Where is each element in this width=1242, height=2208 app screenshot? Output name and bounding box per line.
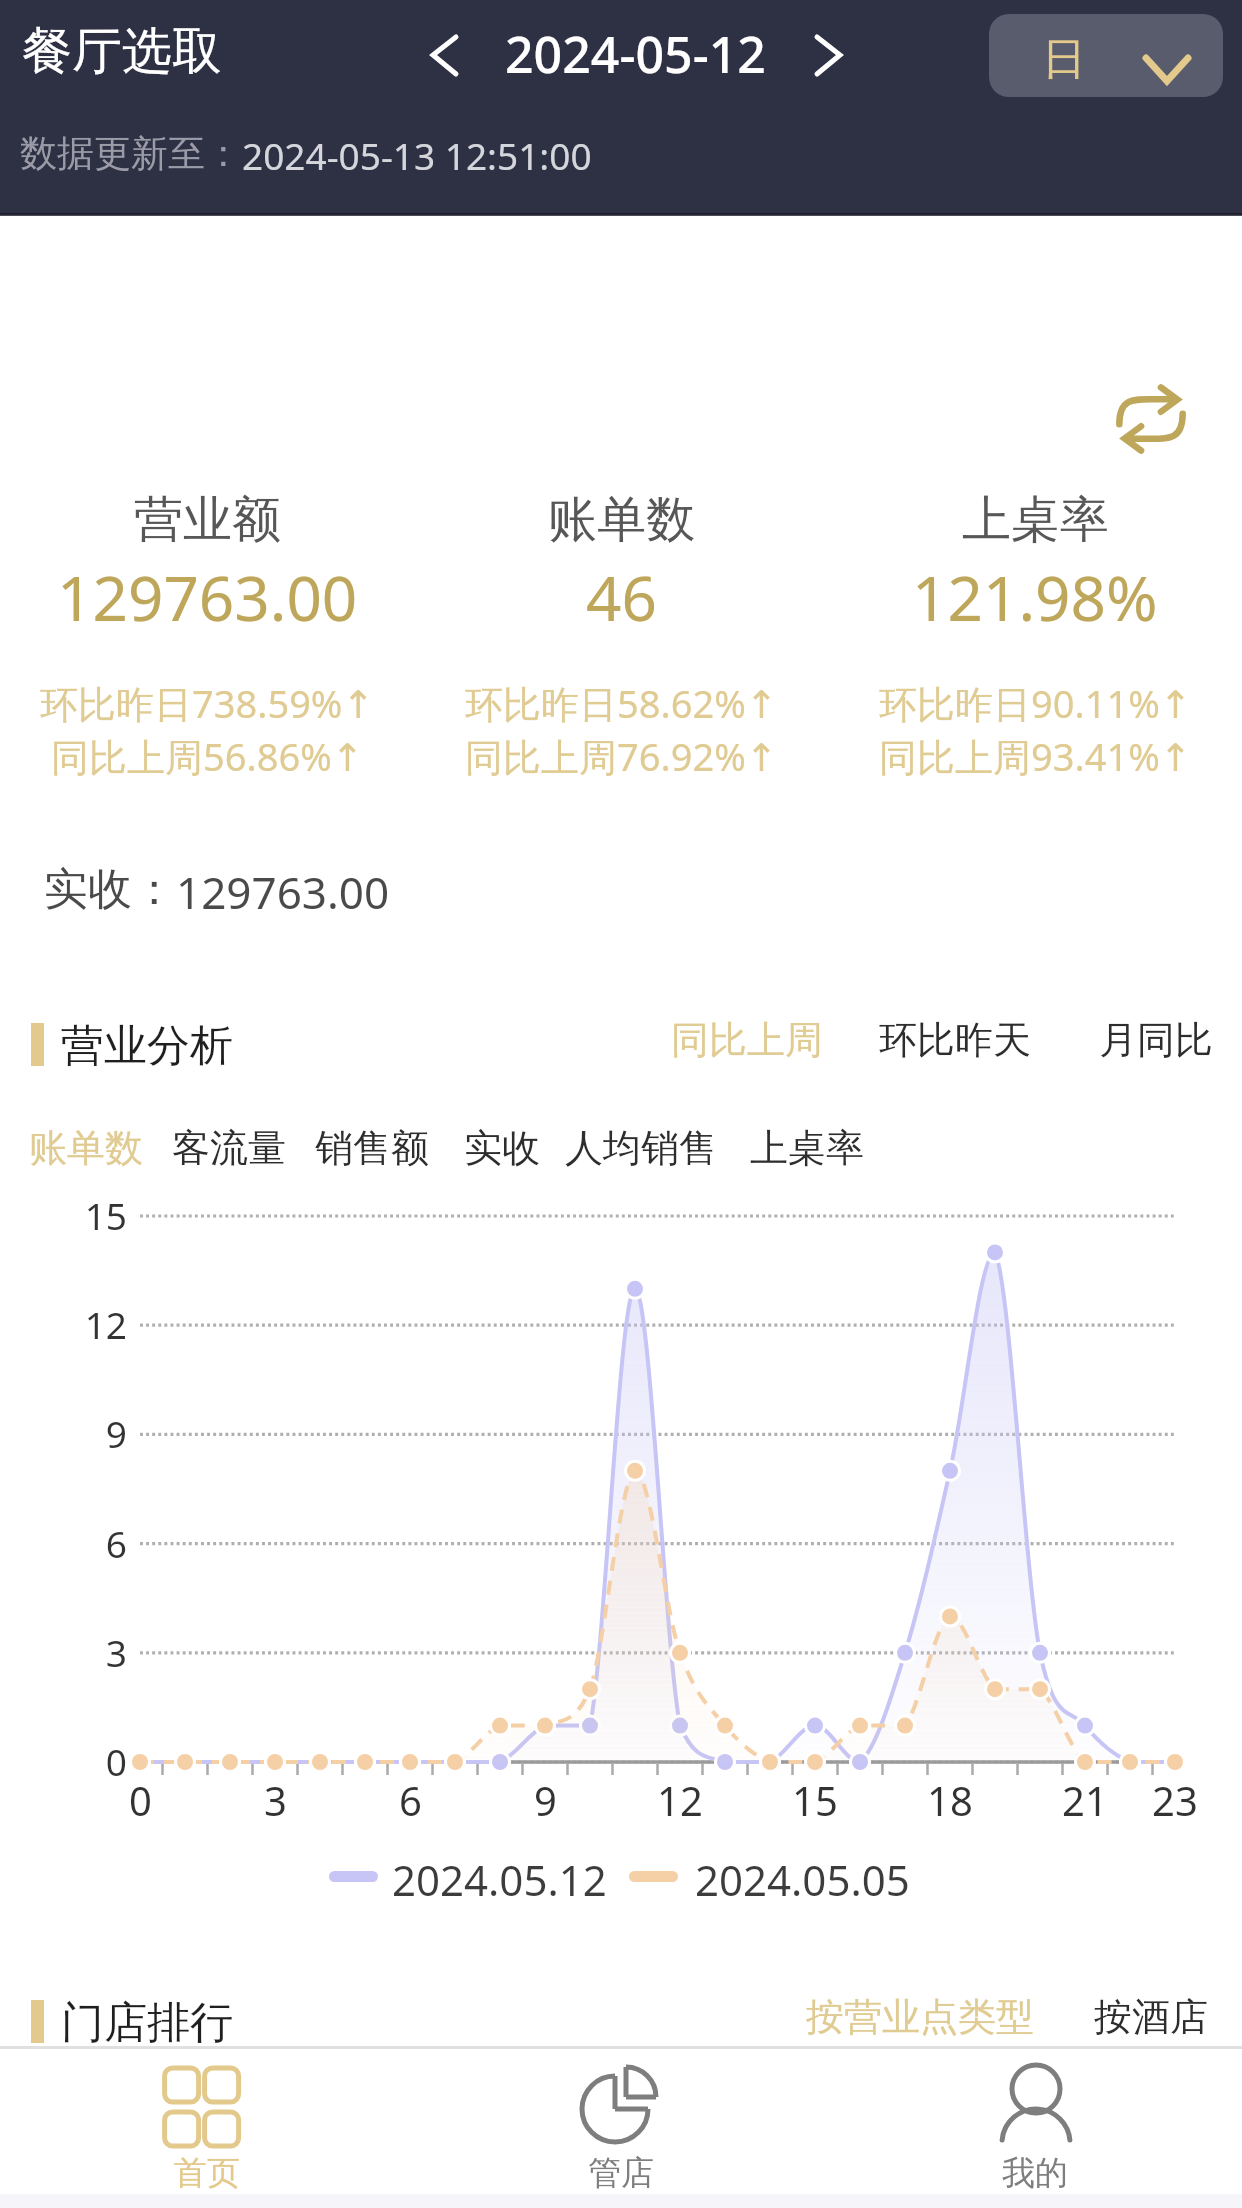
staticText: 日 [1042,32,1086,87]
button[interactable]: 实收： [34,852,400,932]
staticText: 23 [1152,1773,1198,1827]
staticText: 上桌率 [962,489,1109,551]
staticText: 3 [27,1627,127,1677]
button[interactable]: 销售额 [307,1114,437,1182]
staticText: 2024-05-13 12:51:00 [242,130,592,180]
staticText: 餐厅选取 [22,20,222,83]
staticText: 销售额 [315,1124,429,1172]
button[interactable]: 按酒店 [1084,1983,1218,2051]
button[interactable]: 人均销售 [557,1114,725,1182]
staticText: 2024-05-12 [505,20,766,88]
staticText: 2024.05.05 [695,1851,910,1908]
staticText: 营业分析 [61,1019,233,1073]
staticText: 上桌率 [750,1124,864,1172]
staticText: 实收： [44,862,176,917]
button[interactable]: 同比上周 [661,1006,833,1074]
staticText: 我的 [1002,2152,1068,2194]
button[interactable]: 我的 [828,2049,1242,2194]
button[interactable]: 实收 [456,1114,548,1182]
staticText: 同比上周93.41%↑ [879,730,1192,782]
button[interactable]: 上桌率 [828,489,1242,782]
staticText: 人均销售 [565,1124,717,1172]
staticText: 客流量 [172,1124,286,1172]
staticText: 9 [534,1773,557,1827]
staticText: 3 [264,1773,287,1827]
staticText: 18 [927,1773,973,1827]
staticText: 首页 [174,2152,240,2194]
staticText: 15 [27,1190,127,1240]
staticText: 管店 [588,2152,654,2194]
staticText: 12 [657,1773,703,1827]
button[interactable]: 管店 [414,2049,828,2194]
staticText: 同比上周 [671,1016,823,1064]
staticText: 9 [27,1408,127,1458]
staticText: 环比昨日738.59%↑ [40,677,375,729]
button[interactable]: 2024-05-12 [493,8,778,100]
button[interactable]: Previous day [412,25,472,85]
button[interactable]: Switch metrics [1110,378,1192,460]
staticText: 46 [586,555,657,639]
staticText: 0 [129,1773,152,1827]
staticText: 121.98% [912,555,1158,639]
staticText: 129763.00 [176,862,390,922]
staticText: 6 [27,1518,127,1568]
staticText: 环比昨日90.11%↑ [879,677,1192,729]
button[interactable]: 账单数 [21,1114,151,1182]
staticText: 同比上周56.86%↑ [51,730,364,782]
staticText: 环比昨天 [879,1016,1031,1064]
staticText: 12 [27,1299,127,1349]
staticText: 2024.05.12 [392,1851,607,1908]
staticText: 21 [1062,1773,1108,1827]
button[interactable]: 客流量 [164,1114,294,1182]
staticText: 按酒店 [1094,1993,1208,2041]
button[interactable]: 账单数 [414,489,828,782]
staticText: 账单数 [29,1124,143,1172]
staticText: 营业额 [134,489,281,551]
button[interactable]: 环比昨天 [869,1006,1041,1074]
button[interactable]: 餐厅选取 [10,8,234,95]
staticText: 129763.00 [57,555,358,639]
button[interactable]: 首页 [0,2049,414,2194]
staticText: 6 [399,1773,422,1827]
staticText: 15 [792,1773,838,1827]
staticText: 0 [27,1736,127,1786]
staticText: 门店排行 [61,1996,233,2050]
button[interactable]: 月同比 [1089,1006,1223,1074]
button[interactable]: 上桌率 [742,1114,872,1182]
button[interactable]: 按营业点类型 [796,1983,1044,2051]
staticText: 实收 [464,1124,540,1172]
staticText: 环比昨日58.62%↑ [465,677,778,729]
button[interactable]: 营业额 [0,489,414,782]
staticText: 同比上周76.92%↑ [465,730,778,782]
staticText: 数据更新至： [20,130,242,177]
staticText: 账单数 [548,489,695,551]
button[interactable]: Next day [798,25,858,85]
button[interactable]: 日 [989,14,1223,97]
staticText: 月同比 [1099,1016,1213,1064]
staticText: 按营业点类型 [806,1993,1034,2041]
